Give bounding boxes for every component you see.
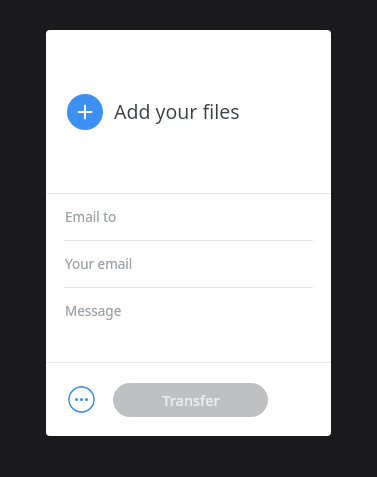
- button[interactable]: Add your files: [46, 30, 331, 193]
- button[interactable]: Transfer: [113, 383, 268, 417]
- button[interactable]: Email to: [46, 194, 331, 241]
- staticText: Message: [65, 302, 122, 320]
- staticText: Transfer: [162, 390, 220, 410]
- button[interactable]: Message: [46, 288, 331, 335]
- button[interactable]: More options: [68, 386, 95, 413]
- button[interactable]: Your email: [46, 241, 331, 288]
- staticText: Add your files: [114, 98, 240, 125]
- staticText: Email to: [65, 208, 117, 226]
- staticText: Your email: [65, 255, 133, 273]
